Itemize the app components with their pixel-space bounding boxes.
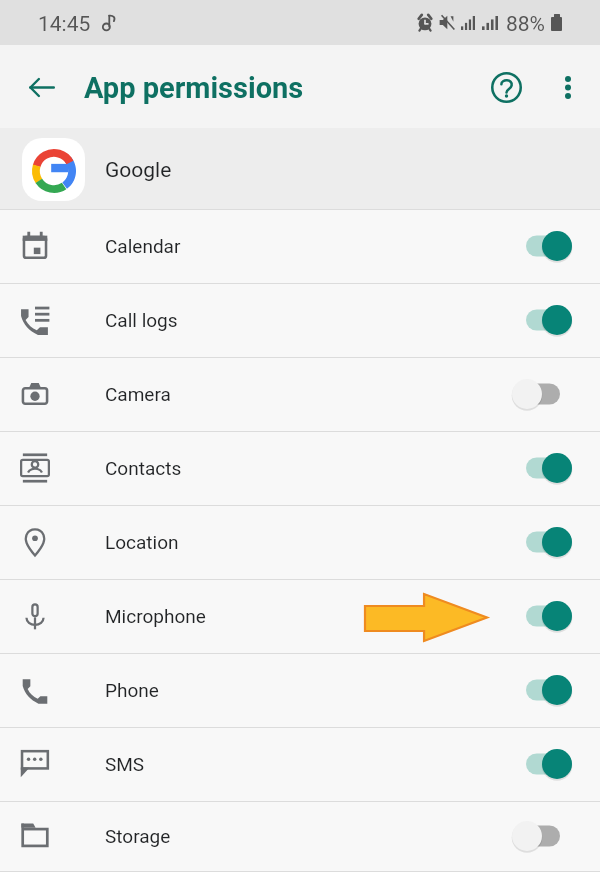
button[interactable]: Navigate up — [18, 63, 66, 111]
button[interactable] — [0, 432, 600, 506]
staticText: Microphone — [105, 605, 206, 627]
staticText: Google — [105, 158, 172, 183]
staticText: Storage — [105, 825, 171, 847]
staticText: Call logs — [105, 309, 178, 331]
staticText: App permissions — [84, 71, 304, 105]
staticText: SMS — [105, 753, 145, 775]
staticText: Phone — [105, 679, 159, 701]
button[interactable] — [0, 506, 600, 580]
button[interactable] — [0, 284, 600, 358]
staticText: 88% — [506, 12, 545, 37]
staticText: 14:45 — [38, 12, 91, 37]
button[interactable] — [0, 728, 600, 802]
button[interactable]: Google — [0, 128, 600, 210]
button[interactable] — [0, 580, 600, 654]
staticText: Location — [105, 531, 179, 553]
staticText: Camera — [105, 383, 171, 405]
button[interactable] — [0, 802, 600, 872]
staticText: Calendar — [105, 235, 181, 257]
button[interactable] — [0, 654, 600, 728]
staticText: Contacts — [105, 457, 182, 479]
button[interactable]: Help — [482, 63, 530, 111]
button[interactable] — [0, 210, 600, 284]
button[interactable]: More options — [544, 63, 592, 111]
button[interactable] — [0, 358, 600, 432]
